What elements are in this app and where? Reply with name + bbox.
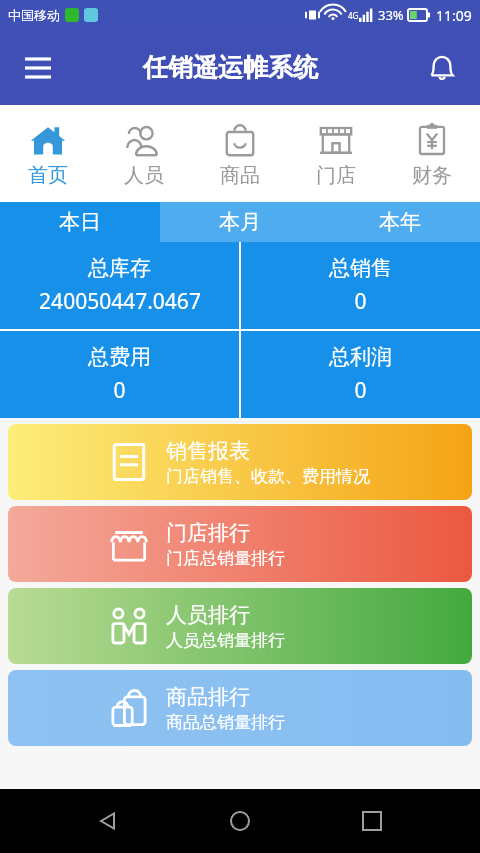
staticText: 总利润 <box>329 344 392 370</box>
staticText: 总销售 <box>329 255 392 281</box>
staticText: 本日 <box>59 209 101 235</box>
staticText: 门店销售、收款、费用情况 <box>166 466 370 487</box>
button[interactable]: 销售报表 <box>8 424 472 500</box>
staticText: 本月 <box>219 209 261 235</box>
button[interactable]: 商品排行 <box>8 670 472 746</box>
button[interactable]: Recents <box>348 797 396 845</box>
button[interactable]: 本年 <box>320 202 480 242</box>
button[interactable]: 人员排行 <box>8 588 472 664</box>
button[interactable]: 总销售 <box>241 242 480 329</box>
button[interactable]: 人员 <box>96 105 192 202</box>
staticText: 门店 <box>316 163 356 188</box>
button[interactable]: 门店 <box>288 105 384 202</box>
staticText: 门店总销量排行 <box>166 548 285 569</box>
staticText: 总库存 <box>88 255 151 281</box>
staticText: 商品 <box>220 163 260 188</box>
staticText: 销售报表 <box>166 438 250 464</box>
staticText: 0 <box>354 287 367 316</box>
button[interactable]: Back <box>84 797 132 845</box>
button[interactable]: Notifications <box>420 46 464 90</box>
staticText: 中国移动 <box>8 7 60 23</box>
button[interactable]: 总库存 <box>0 242 239 329</box>
staticText: 人员排行 <box>166 602 250 628</box>
button[interactable]: 首页 <box>0 105 96 202</box>
button[interactable]: 总利润 <box>241 331 480 418</box>
button[interactable]: 本月 <box>160 202 320 242</box>
staticText: 首页 <box>28 163 68 188</box>
staticText: 商品总销量排行 <box>166 712 285 733</box>
staticText: 0 <box>354 376 367 405</box>
staticText: 门店排行 <box>166 520 250 546</box>
staticText: 本年 <box>379 209 421 235</box>
button[interactable]: Home <box>216 797 264 845</box>
staticText: 人员 <box>124 163 164 188</box>
staticText: 人员总销量排行 <box>166 630 285 651</box>
button[interactable]: 财务 <box>384 105 480 202</box>
staticText: 任销遥运帷系统 <box>143 52 318 83</box>
button[interactable]: Menu <box>18 48 58 88</box>
button[interactable]: 本日 <box>0 202 160 242</box>
staticText: 33% <box>378 6 404 24</box>
button[interactable]: 门店排行 <box>8 506 472 582</box>
staticText: 11:09 <box>436 6 472 25</box>
staticText: 商品排行 <box>166 684 250 710</box>
staticText: 0 <box>113 376 126 405</box>
staticText: 4G <box>348 10 359 21</box>
staticText: 财务 <box>412 163 452 188</box>
button[interactable]: 总费用 <box>0 331 239 418</box>
button[interactable]: 商品 <box>192 105 288 202</box>
staticText: 总费用 <box>88 344 151 370</box>
staticText: 240050447.0467 <box>39 287 201 316</box>
